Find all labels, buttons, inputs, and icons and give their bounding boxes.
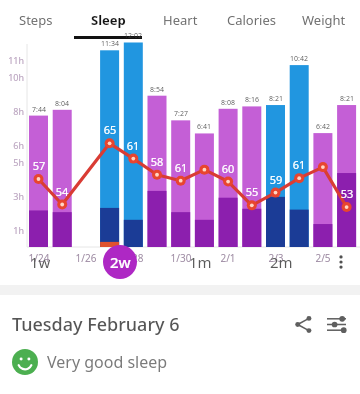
- staticText: 1/26: [70, 251, 102, 265]
- staticText: 57: [27, 158, 51, 173]
- staticText: 6:41: [189, 122, 219, 132]
- staticText: 5h: [2, 156, 24, 168]
- staticText: 8:16: [237, 95, 267, 105]
- button[interactable]: Calories: [216, 0, 288, 40]
- button[interactable]: More options: [322, 239, 360, 285]
- staticText: 11:34: [95, 39, 125, 49]
- staticText: 2m: [270, 252, 293, 272]
- staticText: 1h: [2, 224, 24, 236]
- staticText: 12:02: [118, 31, 148, 41]
- button[interactable]: Heart: [144, 0, 216, 40]
- staticText: 10:42: [284, 54, 314, 64]
- staticText: 1/24: [23, 251, 55, 265]
- staticText: 8h: [2, 105, 24, 117]
- staticText: Sleep: [91, 11, 126, 29]
- staticText: 55: [240, 184, 264, 199]
- staticText: 10h: [2, 71, 24, 83]
- button[interactable]: Settings: [320, 304, 352, 344]
- staticText: Heart: [163, 11, 198, 29]
- button[interactable]: Steps: [0, 0, 72, 40]
- staticText: 61: [287, 157, 311, 172]
- staticText: Tuesday February 6: [12, 312, 286, 337]
- staticText: 8:04: [47, 99, 77, 109]
- staticText: 8:08: [213, 98, 243, 108]
- staticText: 11h: [2, 54, 24, 66]
- staticText: 53: [335, 186, 359, 201]
- staticText: Steps: [19, 11, 53, 29]
- button[interactable]: 1w: [0, 239, 80, 285]
- staticText: 1/30: [165, 251, 197, 265]
- staticText: 8:21: [332, 94, 360, 104]
- button[interactable]: 2w: [80, 239, 160, 285]
- staticText: Calories: [227, 11, 277, 29]
- button[interactable]: Share: [286, 307, 320, 341]
- staticText: 8:21: [261, 94, 291, 104]
- button[interactable]: Weight: [288, 0, 360, 40]
- staticText: 58: [145, 154, 169, 169]
- staticText: 54: [50, 184, 74, 199]
- staticText: 2w: [110, 252, 131, 272]
- staticText: 6h: [2, 139, 24, 151]
- staticText: 6:42: [308, 122, 338, 132]
- staticText: 8:54: [142, 85, 172, 95]
- staticText: 1m: [189, 252, 212, 272]
- staticText: 61: [121, 138, 145, 153]
- button[interactable]: 1m: [160, 239, 241, 285]
- staticText: Weight: [302, 11, 346, 29]
- staticText: 65: [98, 122, 122, 137]
- staticText: 1w: [30, 252, 51, 272]
- staticText: Very good sleep: [47, 351, 168, 373]
- staticText: 2/5: [307, 251, 339, 265]
- staticText: 7:44: [24, 105, 54, 115]
- staticText: 60: [216, 161, 240, 176]
- button[interactable]: 2m: [241, 239, 322, 285]
- staticText: 1/28: [117, 251, 149, 265]
- staticText: 3h: [2, 190, 24, 202]
- staticText: 7:27: [166, 109, 196, 119]
- staticText: 59: [264, 172, 288, 187]
- staticText: 2/1: [212, 251, 244, 265]
- staticText: 61: [169, 160, 193, 175]
- staticText: 2/3: [260, 251, 292, 265]
- button[interactable]: Sleep: [72, 0, 144, 40]
